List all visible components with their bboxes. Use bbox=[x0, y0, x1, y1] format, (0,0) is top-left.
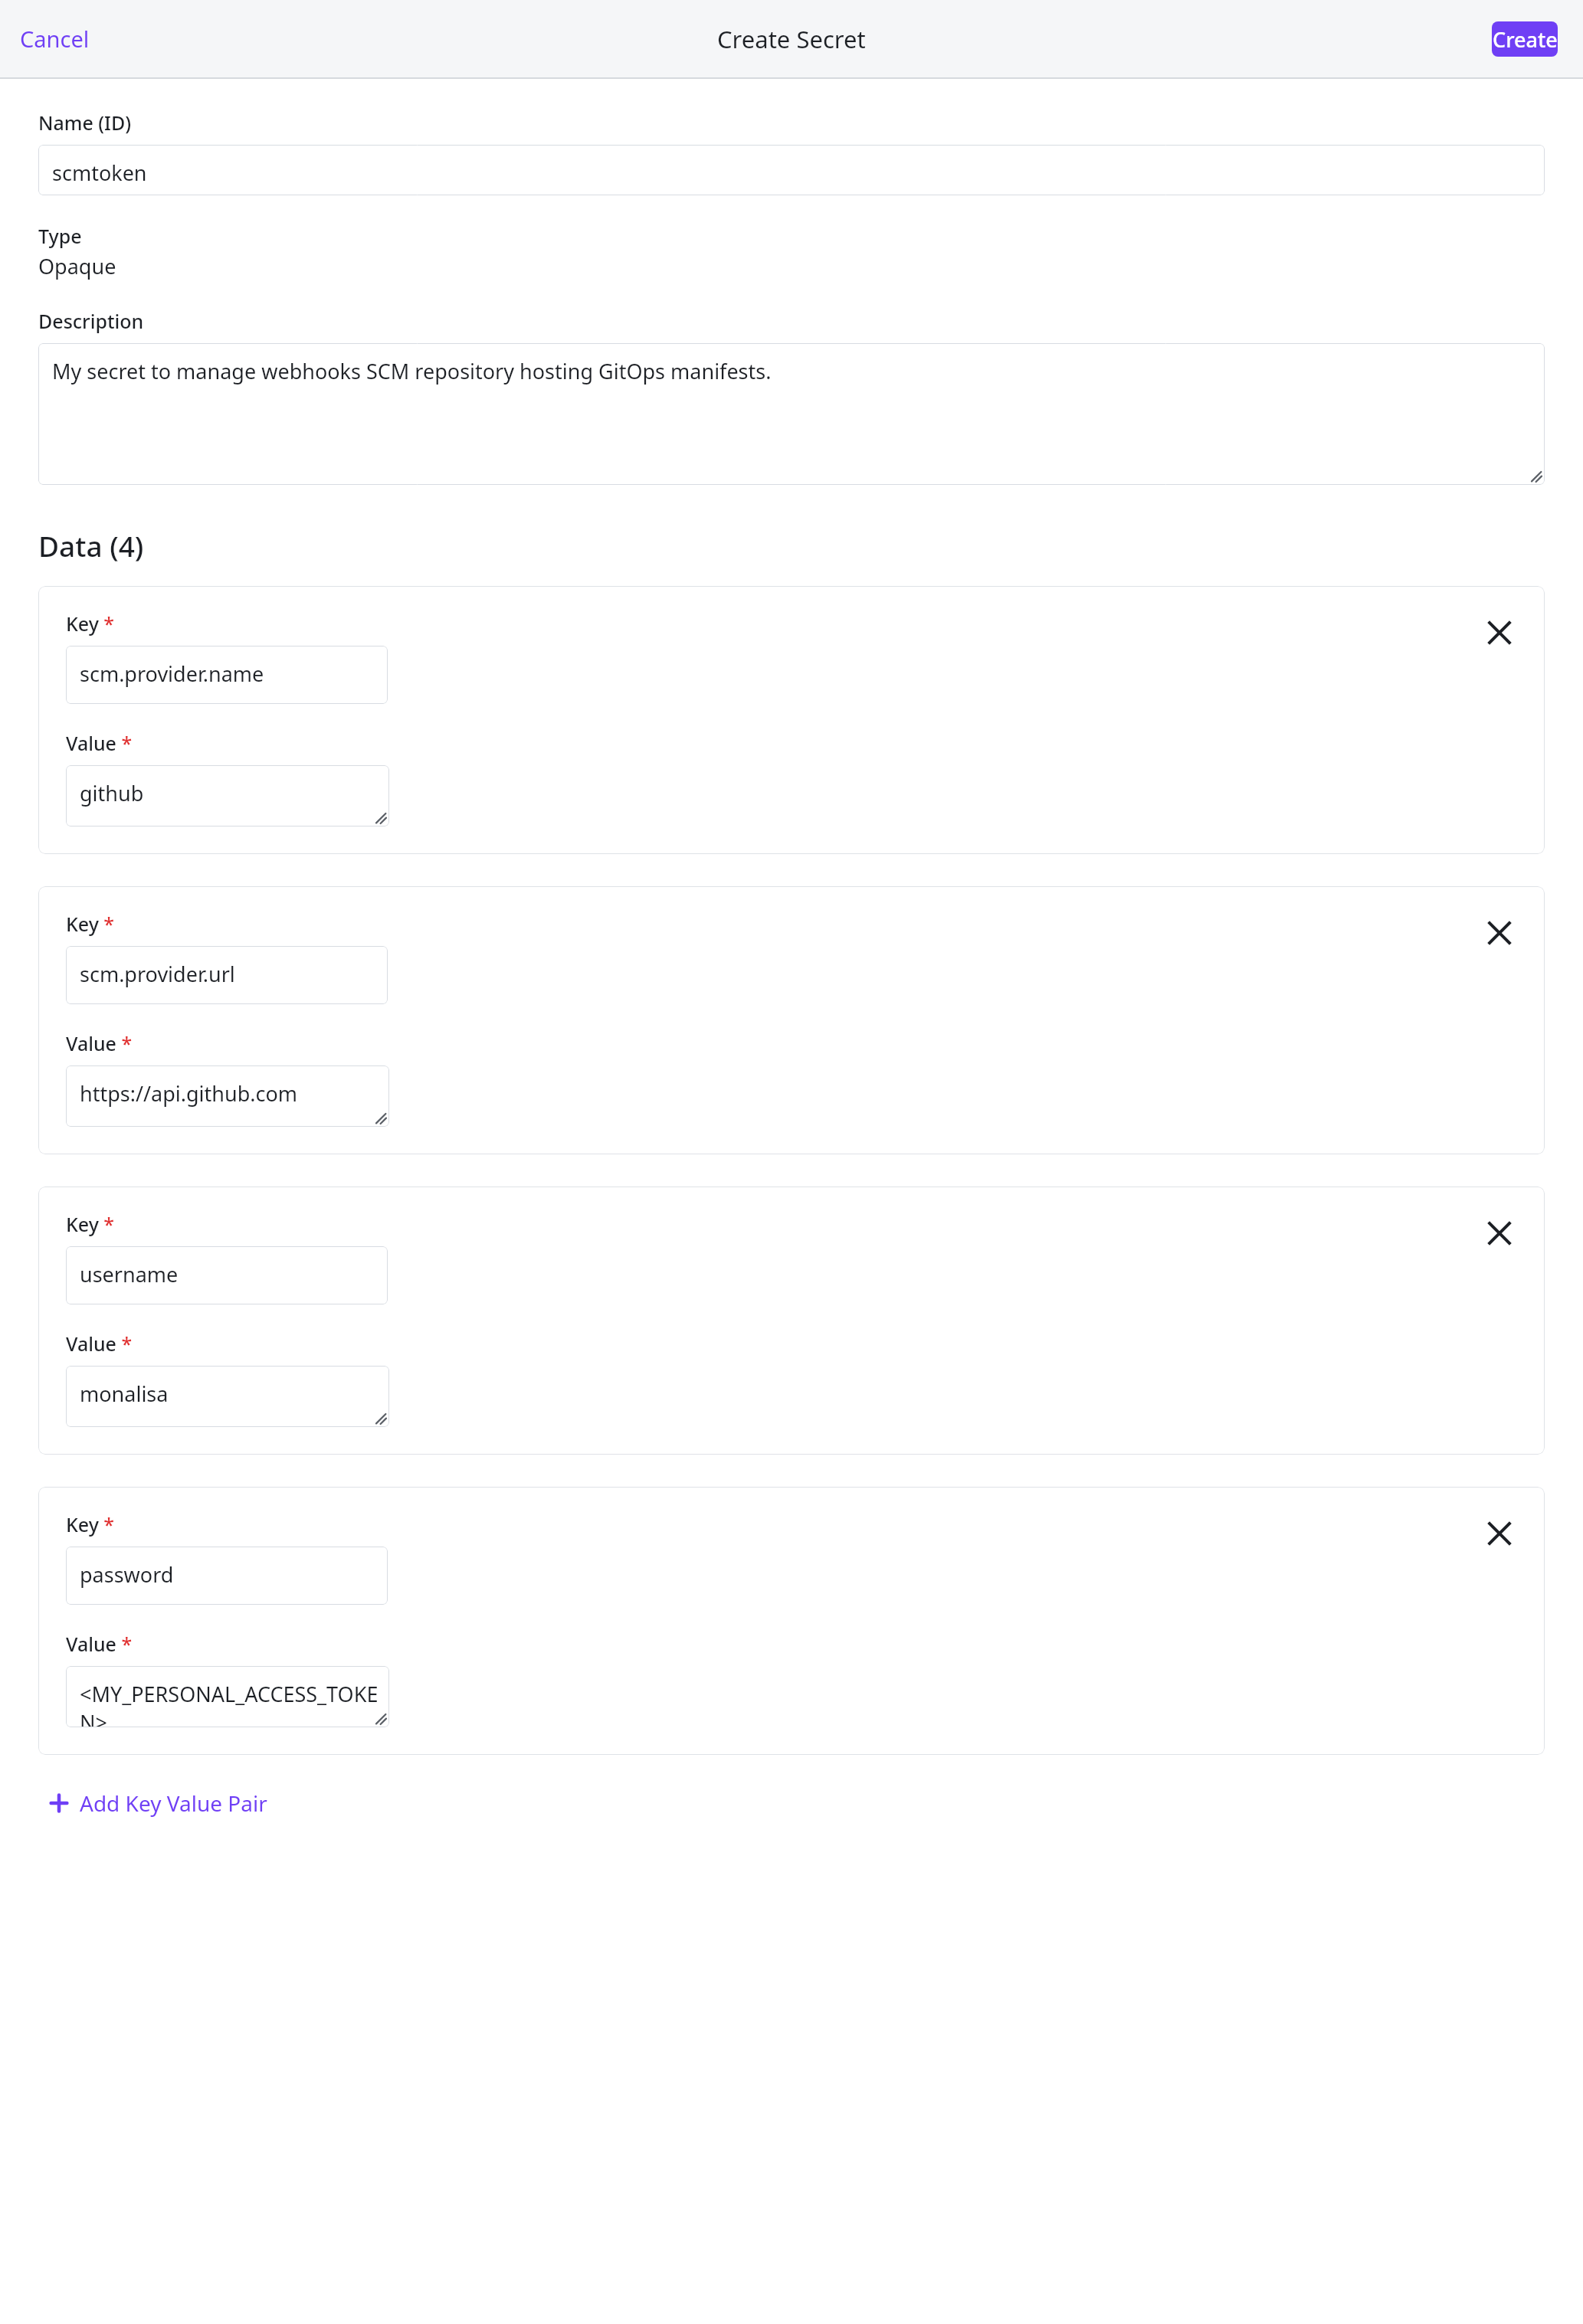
button[interactable]: scmtoken bbox=[38, 145, 1545, 195]
staticText: Key * bbox=[66, 1511, 115, 1537]
button[interactable]: monalisa bbox=[66, 1366, 389, 1427]
staticText: Type bbox=[38, 223, 82, 249]
staticText: Value * bbox=[66, 1030, 133, 1056]
staticText: scm.provider.url bbox=[80, 960, 235, 988]
button[interactable]: github bbox=[66, 765, 389, 826]
staticText: Data (4) bbox=[38, 526, 144, 565]
staticText: monalisa bbox=[80, 1380, 169, 1408]
staticText: Create bbox=[1493, 25, 1558, 54]
button[interactable]: https://api.github.com bbox=[66, 1065, 389, 1127]
button[interactable]: scm.provider.url bbox=[66, 946, 388, 1004]
button[interactable]: My secret to manage webhooks SCM reposit… bbox=[38, 343, 1545, 485]
button[interactable]: scm.provider.name bbox=[66, 646, 388, 704]
button[interactable]: password bbox=[66, 1547, 388, 1605]
staticText: <MY_PERSONAL_ACCESS_TOKEN> bbox=[80, 1680, 389, 1727]
staticText: password bbox=[80, 1560, 174, 1589]
button[interactable]: Remove key value pair bbox=[1479, 1513, 1520, 1554]
staticText: https://api.github.com bbox=[80, 1079, 298, 1108]
staticText: Description bbox=[38, 308, 144, 334]
staticText: Cancel bbox=[20, 24, 90, 54]
button[interactable]: <MY_PERSONAL_ACCESS_TOKEN> bbox=[66, 1666, 389, 1727]
button[interactable]: Add Key Value Pair bbox=[38, 1781, 278, 1825]
staticText: scm.provider.name bbox=[80, 660, 264, 688]
staticText: Key * bbox=[66, 911, 115, 937]
staticText: Value * bbox=[66, 1631, 133, 1657]
button[interactable]: Remove key value pair bbox=[1479, 912, 1520, 954]
staticText: Opaque bbox=[38, 252, 116, 280]
button[interactable]: username bbox=[66, 1246, 388, 1304]
staticText: Key * bbox=[66, 610, 115, 637]
button[interactable]: Remove key value pair bbox=[1479, 612, 1520, 653]
staticText: Create Secret bbox=[717, 23, 866, 55]
staticText: github bbox=[80, 779, 144, 807]
button[interactable]: Remove key value pair bbox=[1479, 1213, 1520, 1254]
staticText: username bbox=[80, 1260, 179, 1288]
button[interactable]: Cancel bbox=[8, 16, 102, 61]
staticText: Value * bbox=[66, 730, 133, 756]
staticText: My secret to manage webhooks SCM reposit… bbox=[52, 357, 772, 385]
staticText: Value * bbox=[66, 1331, 133, 1357]
button[interactable]: Create bbox=[1492, 21, 1558, 57]
staticText: Name (ID) bbox=[38, 110, 131, 136]
staticText: Add Key Value Pair bbox=[80, 1789, 267, 1818]
staticText: Key * bbox=[66, 1211, 115, 1237]
staticText: scmtoken bbox=[52, 159, 147, 187]
